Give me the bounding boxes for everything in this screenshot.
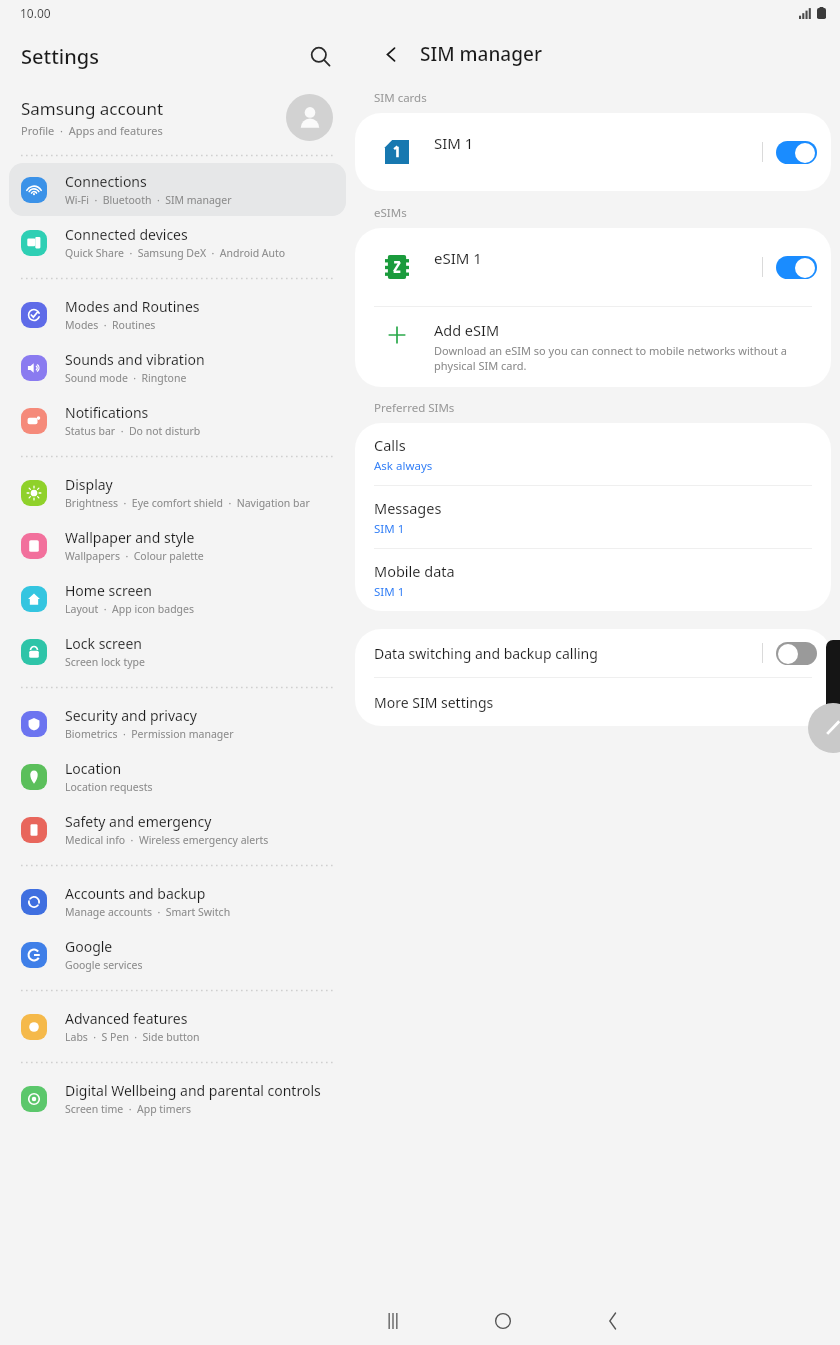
button[interactable]: Connected devices: [9, 216, 346, 269]
button[interactable]: Security and privacy: [9, 697, 346, 750]
staticText: Digital Wellbeing and parental controls: [65, 1081, 321, 1100]
staticText: More SIM settings: [374, 693, 494, 712]
staticText: Location: [65, 759, 122, 778]
staticText: Advanced features: [65, 1009, 188, 1028]
staticText: Wallpaper and style: [65, 528, 195, 547]
staticText: Biometrics · Permission manager: [65, 727, 234, 741]
staticText: Sound mode · Ringtone: [65, 371, 187, 385]
staticText: Accounts and backup: [65, 884, 206, 903]
staticText: Labs · S Pen · Side button: [65, 1030, 200, 1044]
button[interactable]: Edge panel handle: [826, 640, 840, 722]
button[interactable]: On: [776, 141, 817, 164]
staticText: Brightness · Eye comfort shield · Naviga…: [65, 496, 310, 510]
staticText: Display: [65, 475, 113, 494]
staticText: Sounds and vibration: [65, 350, 205, 369]
button[interactable]: Home: [479, 1297, 527, 1345]
button[interactable]: More SIM settings: [355, 678, 831, 726]
button[interactable]: Search: [299, 35, 341, 77]
staticText: Safety and emergency: [65, 812, 212, 831]
button[interactable]: Lock screen: [9, 625, 346, 678]
button[interactable]: Wallpaper and style: [9, 519, 346, 572]
button[interactable]: Data switching and backup calling: [355, 629, 831, 677]
button[interactable]: Messages: [355, 486, 831, 548]
staticText: Location requests: [65, 780, 153, 794]
staticText: SIM cards: [374, 90, 427, 106]
staticText: Messages: [374, 498, 442, 518]
button[interactable]: eSIM 1: [355, 228, 831, 306]
button[interactable]: Home screen: [9, 572, 346, 625]
button[interactable]: Modes and Routines: [9, 288, 346, 341]
button[interactable]: Samsung account: [0, 86, 355, 155]
button[interactable]: Off: [776, 642, 817, 665]
staticText: Wallpapers · Colour palette: [65, 549, 204, 563]
staticText: Manage accounts · Smart Switch: [65, 905, 231, 919]
staticText: Status bar · Do not disturb: [65, 424, 201, 438]
staticText: SIM 1: [374, 521, 405, 537]
staticText: Wi-Fi · Bluetooth · SIM manager: [65, 193, 232, 207]
button[interactable]: Location: [9, 750, 346, 803]
staticText: Ask always: [374, 458, 433, 474]
staticText: 10.00: [20, 5, 51, 21]
staticText: Modes · Routines: [65, 318, 156, 332]
staticText: Data switching and backup calling: [374, 644, 762, 663]
staticText: Download an eSIM so you can connect to m…: [434, 343, 809, 373]
staticText: Medical info · Wireless emergency alerts: [65, 833, 269, 847]
button[interactable]: Recents: [369, 1297, 417, 1345]
button[interactable]: Connections: [9, 163, 346, 216]
button[interactable]: Add eSIM: [355, 307, 831, 387]
staticText: Screen time · App timers: [65, 1102, 191, 1116]
staticText: Notifications: [65, 403, 149, 422]
staticText: SIM manager: [420, 41, 542, 67]
staticText: Add eSIM: [434, 320, 500, 340]
button[interactable]: Advanced features: [9, 1000, 346, 1053]
staticText: Profile · Apps and features: [21, 123, 163, 138]
staticText: Calls: [374, 435, 406, 455]
staticText: Security and privacy: [65, 706, 197, 725]
staticText: Lock screen: [65, 634, 143, 653]
button[interactable]: Sounds and vibration: [9, 341, 346, 394]
button[interactable]: Safety and emergency: [9, 803, 346, 856]
staticText: Preferred SIMs: [374, 400, 455, 416]
button[interactable]: Calls: [355, 423, 831, 485]
button[interactable]: Edit: [808, 703, 840, 753]
button[interactable]: SIM 1: [355, 113, 831, 191]
staticText: Layout · App icon badges: [65, 602, 195, 616]
staticText: Mobile data: [374, 561, 455, 581]
button[interactable]: Back: [371, 34, 411, 74]
button[interactable]: Display: [9, 466, 346, 519]
button[interactable]: On: [776, 256, 817, 279]
button[interactable]: Back: [589, 1297, 637, 1345]
button[interactable]: Digital Wellbeing and parental controls: [9, 1072, 346, 1125]
staticText: Connections: [65, 172, 147, 191]
staticText: Screen lock type: [65, 655, 145, 669]
button[interactable]: Mobile data: [355, 549, 831, 611]
button[interactable]: Google: [9, 928, 346, 981]
staticText: Modes and Routines: [65, 297, 200, 316]
button[interactable]: Accounts and backup: [9, 875, 346, 928]
staticText: Settings: [21, 43, 99, 70]
staticText: SIM 1: [434, 133, 762, 153]
staticText: Connected devices: [65, 225, 188, 244]
staticText: Samsung account: [21, 97, 164, 120]
staticText: eSIMs: [374, 205, 407, 221]
staticText: Google services: [65, 958, 143, 972]
staticText: Home screen: [65, 581, 152, 600]
staticText: Google: [65, 937, 113, 956]
staticText: SIM 1: [374, 584, 405, 600]
staticText: eSIM 1: [434, 248, 762, 268]
staticText: Quick Share · Samsung DeX · Android Auto: [65, 246, 286, 260]
button[interactable]: Notifications: [9, 394, 346, 447]
